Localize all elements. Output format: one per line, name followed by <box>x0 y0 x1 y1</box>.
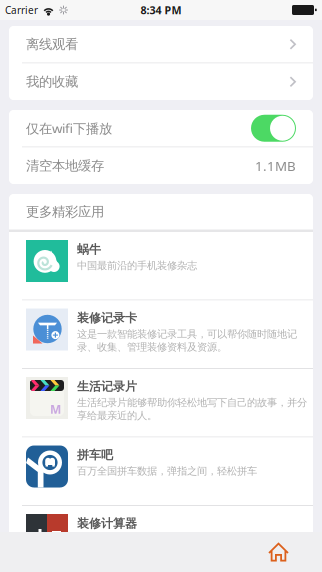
button[interactable]: Home <box>259 533 298 571</box>
staticText: 1.1MB <box>255 157 296 175</box>
staticText: 清空本地缓存 <box>26 157 104 174</box>
staticText: M <box>50 401 61 417</box>
button[interactable]: 拼车吧 <box>9 437 313 505</box>
staticText: 生活纪录片能够帮助你轻松地写下自己的故事，并分享给最亲近的人。 <box>77 396 307 422</box>
staticText: Carrier <box>5 3 38 17</box>
staticText: 百万全国拼车数据，弹指之间，轻松拼车 <box>77 465 257 477</box>
staticText: 拼车吧 <box>77 447 113 463</box>
staticText: 蜗牛 <box>77 242 101 257</box>
button[interactable]: 装修记录卡 <box>9 300 313 368</box>
button[interactable]: 蜗牛 <box>9 232 313 299</box>
button[interactable]: 清空本地缓存 <box>9 147 313 184</box>
staticText: 生活记录片 <box>77 379 137 394</box>
staticText: 中国最前沿的手机装修杂志 <box>77 259 197 272</box>
staticText: 8:34 PM <box>140 3 181 17</box>
button[interactable]: 装修计算器 <box>9 506 313 572</box>
staticText: 离线观看 <box>26 36 78 53</box>
button[interactable]: 离线观看 <box>9 26 313 62</box>
staticText: 我的收藏 <box>26 73 78 90</box>
button[interactable]: Wi-Fi only playback toggle <box>251 115 296 142</box>
staticText: 仅在wifi下播放 <box>26 119 112 137</box>
staticText: 装修记录卡 <box>77 310 137 326</box>
button[interactable]: M <box>9 369 313 436</box>
staticText: 这是一款智能装修记录工具，可以帮你随时随地记录、收集、管理装修资料及资源。 <box>77 328 297 353</box>
staticText: 装修计算器 <box>77 516 137 531</box>
button[interactable]: 我的收藏 <box>9 63 313 100</box>
staticText: 更多精彩应用 <box>26 203 104 220</box>
